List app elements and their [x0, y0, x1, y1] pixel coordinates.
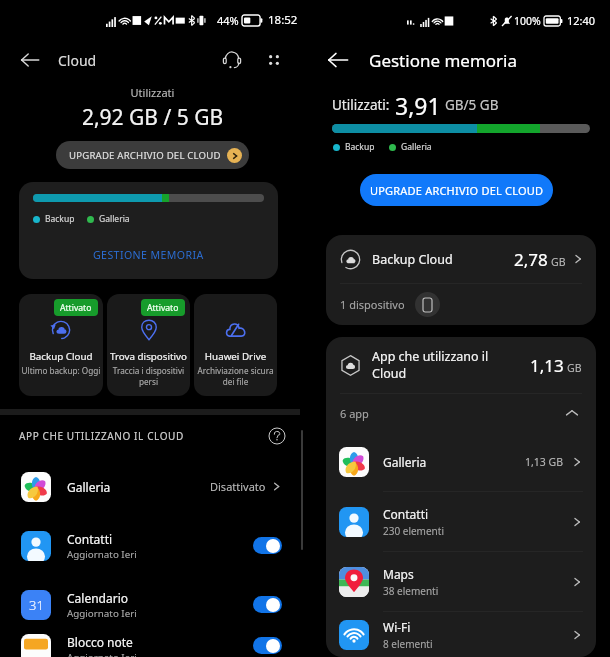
staticText: UPGRADE ARCHIVIO DEL CLOUD: [370, 183, 544, 198]
staticText: Aggiornato Ieri: [67, 607, 137, 620]
staticText: Huawei Drive: [195, 350, 276, 363]
button[interactable]: Backup: [19, 182, 278, 279]
staticText: UPGRADE ARCHIVIO DEL CLOUD: [69, 149, 221, 162]
staticText: Traccia i dispositivi persi: [108, 365, 189, 387]
staticText: 6 app: [340, 406, 369, 421]
staticText: App che utilizzano il: [372, 348, 489, 365]
button[interactable]: 6 app: [326, 394, 596, 432]
staticText: Attivato: [147, 302, 179, 314]
button[interactable]: Wi-Fi: [326, 612, 596, 657]
staticText: 3,91: [395, 90, 441, 118]
staticText: Ultimo backup: Oggi: [20, 365, 102, 376]
button[interactable]: Toggle Blocco note: [253, 637, 282, 654]
button[interactable]: Backup Cloud: [326, 235, 596, 283]
staticText: 44%: [217, 13, 239, 28]
staticText: Wi-Fi: [383, 619, 411, 635]
staticText: Backup Cloud: [20, 350, 102, 363]
staticText: 38 elementi: [383, 584, 439, 598]
button[interactable]: Contatti: [0, 516, 305, 575]
staticText: 1 dispositivo: [340, 297, 405, 312]
button[interactable]: Galleria: [0, 457, 305, 516]
button[interactable]: More options: [261, 47, 287, 73]
staticText: GB/5 GB: [445, 96, 499, 114]
staticText: GB: [551, 255, 566, 269]
staticText: Cloud: [372, 365, 407, 382]
staticText: Attivato: [60, 302, 92, 314]
staticText: Contatti: [383, 506, 429, 522]
button[interactable]: Back: [323, 45, 353, 75]
staticText: Blocco note: [67, 634, 133, 650]
staticText: Disattivato: [210, 479, 266, 494]
staticText: Cloud: [58, 51, 97, 70]
button[interactable]: Maps: [326, 552, 596, 611]
button[interactable]: App che utilizzano il: [326, 337, 596, 393]
button[interactable]: Toggle Contatti: [253, 537, 282, 554]
button[interactable]: UPGRADE ARCHIVIO DEL CLOUD: [56, 141, 249, 169]
staticText: Aggiornato Ieri: [67, 651, 137, 657]
staticText: Contatti: [67, 531, 113, 547]
staticText: Maps: [383, 566, 414, 582]
staticText: Galleria: [401, 141, 432, 153]
staticText: Calendario: [67, 590, 129, 606]
staticText: 230 elementi: [383, 524, 444, 538]
staticText: Backup Cloud: [372, 251, 453, 268]
staticText: 100%: [514, 14, 541, 28]
staticText: Utilizzati:: [332, 96, 390, 114]
staticText: Trova dispositivo: [108, 350, 189, 363]
staticText: 18:52: [268, 12, 298, 28]
button[interactable]: UPGRADE ARCHIVIO DEL CLOUD: [360, 174, 553, 206]
button[interactable]: Contatti: [326, 492, 596, 551]
button[interactable]: Attivato: [107, 294, 190, 396]
staticText: Aggiornato Ieri: [67, 548, 137, 561]
staticText: GB: [567, 361, 582, 375]
staticText: Archiviazione sicura dei file: [195, 365, 276, 387]
button[interactable]: Huawei Drive: [194, 294, 277, 396]
button[interactable]: Blocco note: [0, 634, 305, 657]
staticText: 2,92 GB / 5 GB: [0, 103, 305, 132]
staticText: GESTIONE MEMORIA: [93, 248, 204, 262]
staticText: 12:40: [567, 13, 596, 28]
staticText: Gestione memoria: [369, 49, 518, 72]
button[interactable]: Galleria: [326, 432, 596, 491]
button[interactable]: 31: [0, 575, 305, 634]
button[interactable]: GESTIONE MEMORIA: [33, 248, 264, 262]
button[interactable]: Help: [265, 424, 289, 448]
staticText: 2,78: [514, 248, 548, 271]
staticText: Galleria: [99, 213, 130, 225]
button[interactable]: Support: [218, 46, 246, 74]
staticText: Backup: [345, 141, 375, 153]
staticText: 31: [29, 596, 44, 614]
button[interactable]: Back: [15, 45, 45, 75]
button[interactable]: Attivato: [19, 294, 103, 396]
button[interactable]: Toggle Calendario: [253, 596, 282, 613]
staticText: Backup: [45, 213, 75, 225]
staticText: 8 elementi: [383, 637, 433, 651]
staticText: 1,13: [530, 354, 564, 377]
staticText: APP CHE UTILIZZANO IL CLOUD: [19, 429, 184, 443]
staticText: Utilizzati: [0, 85, 305, 100]
staticText: Galleria: [383, 454, 427, 470]
staticText: 1,13 GB: [525, 455, 564, 469]
staticText: Galleria: [67, 479, 111, 495]
